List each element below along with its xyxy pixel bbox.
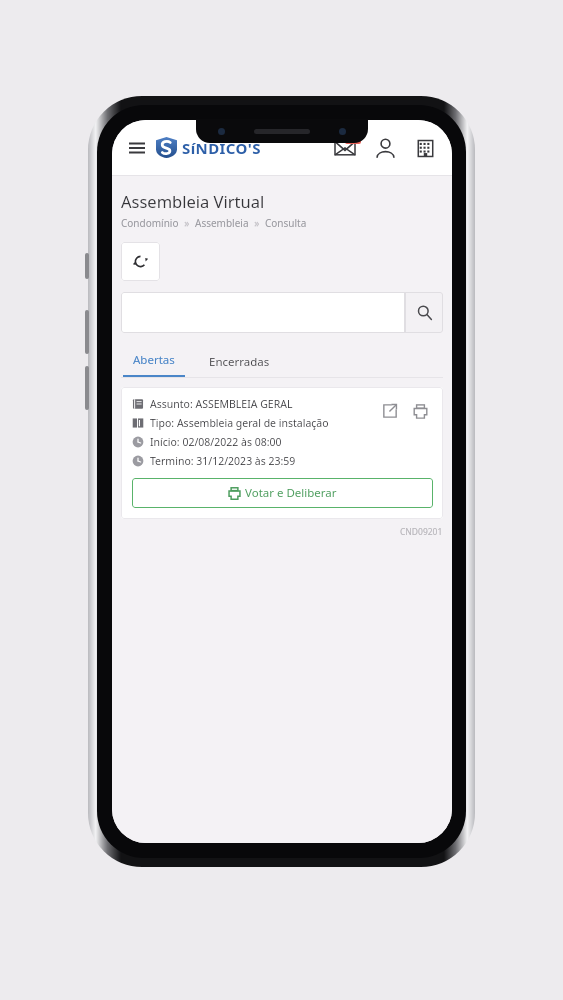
button[interactable]: Mensagens bbox=[328, 131, 362, 165]
button[interactable]: Encerradas bbox=[197, 347, 282, 377]
staticText: CND09201 bbox=[400, 526, 443, 538]
button[interactable]: Perfil bbox=[368, 131, 402, 165]
staticText: Início: 02/08/2022 às 08:00 bbox=[150, 435, 282, 449]
staticText: Consulta bbox=[265, 216, 307, 230]
button[interactable]: Atualizar bbox=[121, 242, 160, 281]
staticText: Assunto: ASSEMBLEIA GERAL bbox=[150, 397, 293, 411]
button[interactable]: Condomínio bbox=[408, 131, 442, 165]
staticText: Assembleia bbox=[195, 216, 249, 230]
staticText: Assembleia Virtual bbox=[121, 190, 265, 212]
button[interactable]: Abrir bbox=[377, 398, 403, 424]
staticText: Encerradas bbox=[209, 354, 270, 370]
staticText: Condomínio bbox=[121, 216, 179, 230]
staticText: Termino: 31/12/2023 às 23:59 bbox=[150, 454, 296, 468]
button[interactable]: Menu bbox=[122, 133, 152, 163]
staticText: Votar e Deliberar bbox=[245, 485, 337, 501]
button[interactable]: Imprimir bbox=[407, 398, 433, 424]
button[interactable]: Votar e Deliberar bbox=[132, 478, 433, 508]
staticText: SíNDICO'S bbox=[182, 138, 261, 158]
button[interactable] bbox=[121, 292, 405, 333]
staticText: Tipo: Assembleia geral de instalação bbox=[150, 416, 329, 430]
staticText: Abertas bbox=[133, 352, 175, 368]
staticText: » bbox=[249, 216, 265, 230]
staticText: 16 bbox=[348, 133, 358, 144]
button[interactable]: Abertas bbox=[121, 345, 187, 377]
staticText: » bbox=[179, 216, 195, 230]
button[interactable]: Buscar bbox=[405, 292, 443, 333]
